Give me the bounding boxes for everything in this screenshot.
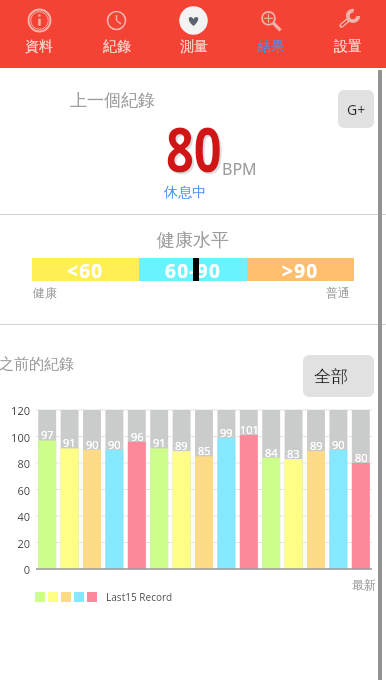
staticText: 101 [240, 422, 259, 437]
staticText: 休息中 [164, 184, 206, 202]
staticText: 91 [63, 435, 76, 450]
staticText: 20 [17, 536, 30, 551]
staticText: 85 [198, 443, 211, 458]
staticText: Last15 Record [106, 590, 173, 604]
staticText: 90 [332, 437, 345, 452]
staticText: 100 [11, 430, 30, 445]
staticText: 健康 [33, 285, 57, 300]
button[interactable]: 紀錄 [78, 0, 155, 68]
button[interactable]: 設置 [309, 0, 386, 68]
staticText: 90 [86, 437, 99, 452]
staticText: 80 [168, 109, 225, 191]
staticText: G+ [347, 100, 366, 119]
staticText: 99 [220, 425, 233, 440]
staticText: 40 [17, 509, 30, 524]
staticText: 全部 [314, 366, 348, 387]
staticText: <60 [67, 258, 104, 281]
button[interactable]: G+ [338, 90, 374, 128]
button[interactable]: 資料 [0, 0, 78, 68]
staticText: >90 [282, 258, 319, 281]
staticText: 60-90 [165, 258, 222, 281]
staticText: 健康水平 [0, 229, 386, 252]
staticText: 設置 [334, 38, 362, 56]
staticText: 0 [23, 562, 30, 577]
staticText: 91 [153, 435, 166, 450]
staticText: BPM [222, 158, 257, 180]
staticText: 97 [41, 427, 54, 442]
button[interactable]: 測量 [155, 0, 232, 68]
staticText: 測量 [180, 38, 208, 56]
staticText: 83 [287, 446, 300, 461]
staticText: 上一個紀錄 [70, 90, 155, 111]
staticText: 普通 [326, 285, 350, 300]
staticText: 89 [310, 438, 323, 453]
staticText: 84 [265, 445, 278, 460]
staticText: 89 [175, 438, 188, 453]
staticText: 80 [355, 450, 368, 465]
staticText: 80 [17, 456, 30, 471]
staticText: 80 [166, 107, 223, 189]
staticText: 60 [17, 483, 30, 498]
staticText: 96 [131, 429, 144, 444]
button[interactable]: 結果 [232, 0, 309, 68]
staticText: 之前的紀錄 [0, 355, 74, 374]
staticText: 最新 [352, 577, 376, 592]
staticText: 紀錄 [103, 38, 131, 56]
staticText: 資料 [25, 38, 53, 56]
button[interactable]: 全部 [303, 355, 374, 397]
staticText: 120 [11, 403, 30, 418]
staticText: 90 [108, 437, 121, 452]
staticText: 結果 [257, 38, 285, 56]
